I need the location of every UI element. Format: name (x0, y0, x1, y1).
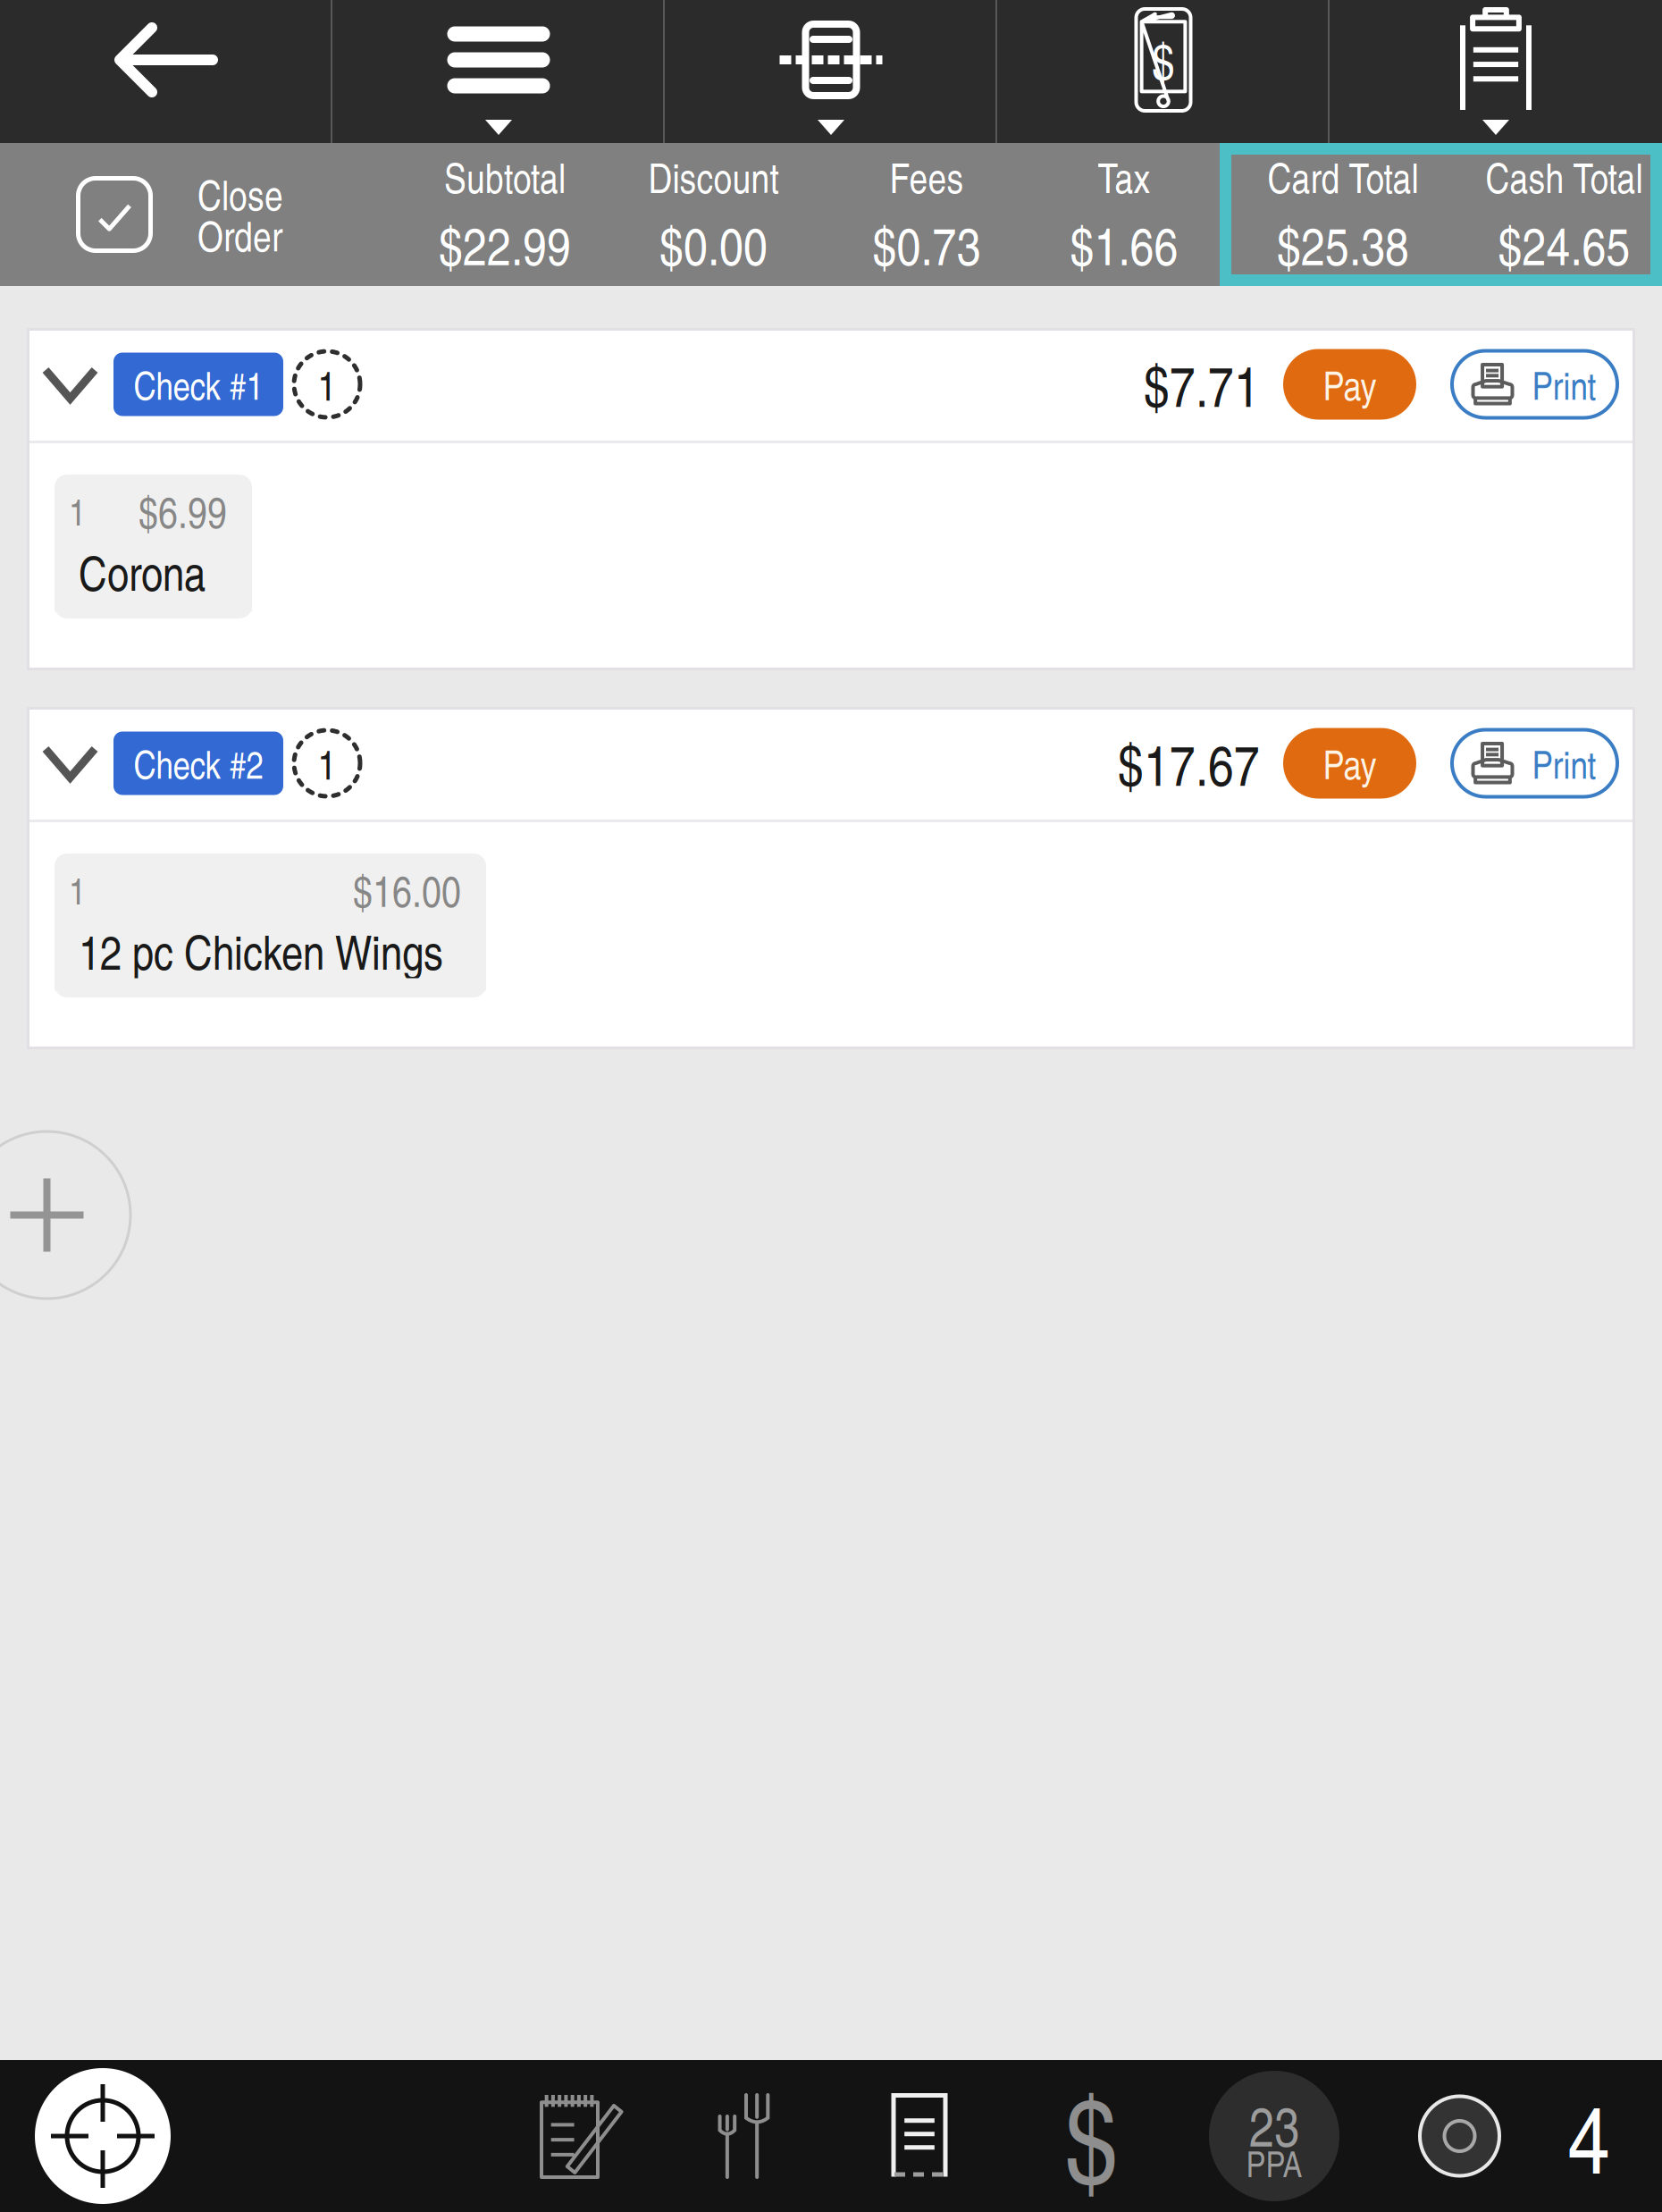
staticText: Check #2 (134, 737, 263, 789)
button[interactable]: Menu items (670, 2060, 822, 2212)
staticText: 1 (318, 357, 336, 412)
button[interactable]: Check #1 (113, 353, 283, 416)
button[interactable]: 4 (1537, 2060, 1641, 2212)
button[interactable]: Pay (1283, 349, 1416, 420)
staticText: $ (1152, 26, 1175, 94)
staticText: $0.00 (659, 208, 768, 280)
staticText: $1.66 (1070, 208, 1178, 280)
staticText: $0.73 (873, 208, 981, 280)
staticText: $25.38 (1277, 208, 1409, 280)
staticText: Pay (1323, 357, 1377, 411)
staticText: 23 (1249, 2087, 1299, 2162)
button[interactable]: 1 (55, 475, 252, 618)
button[interactable]: Record (1382, 2060, 1537, 2212)
staticText: Fees (890, 149, 964, 205)
button[interactable]: Menu (332, 0, 665, 143)
staticText: PPA (1246, 2138, 1302, 2187)
button[interactable]: 1 (55, 854, 486, 997)
staticText: $22.99 (439, 208, 571, 280)
staticText: Check #1 (134, 358, 263, 410)
staticText: $ (1065, 2056, 1118, 2212)
staticText: Subtotal (444, 149, 566, 205)
staticText: Order (197, 207, 282, 263)
button[interactable]: Guest count (283, 707, 371, 820)
button[interactable]: Print (1450, 728, 1619, 799)
staticText: $7.71 (1144, 346, 1260, 423)
button[interactable]: Collapse check (27, 328, 113, 441)
staticText: 1 (69, 485, 86, 536)
staticText: 12 pc Chicken Wings (79, 918, 443, 983)
staticText: $24.65 (1498, 208, 1630, 280)
button[interactable]: Check #2 (113, 732, 283, 795)
staticText: 4 (1568, 2072, 1610, 2200)
button[interactable]: Target (0, 2060, 206, 2212)
staticText: Print (1532, 358, 1596, 410)
button[interactable]: Pay (1283, 728, 1416, 799)
staticText: Print (1532, 737, 1596, 789)
staticText: $16.00 (353, 860, 461, 919)
staticText: $6.99 (138, 481, 227, 540)
button[interactable]: 23 per person average (1166, 2060, 1382, 2212)
button[interactable]: Payments (1017, 2060, 1166, 2212)
staticText: Discount (648, 149, 779, 205)
staticText: Tax (1098, 149, 1150, 205)
button[interactable]: Receipt (822, 2060, 1017, 2212)
button[interactable]: Order notes (1330, 0, 1662, 143)
staticText: Close (197, 166, 283, 222)
staticText: $17.67 (1118, 725, 1260, 802)
staticText: 1 (69, 864, 86, 915)
button[interactable]: Notes (493, 2060, 670, 2212)
staticText: Cash Total (1486, 149, 1643, 205)
staticText: Corona (79, 539, 206, 604)
staticText: Card Total (1267, 149, 1419, 205)
button[interactable]: Card Total (1220, 143, 1662, 286)
button[interactable]: Close (0, 143, 407, 286)
button[interactable]: Collapse check (27, 707, 113, 820)
button[interactable]: Split check (665, 0, 997, 143)
button[interactable]: Pay by phone (997, 0, 1330, 143)
button[interactable]: Guest count (283, 328, 371, 441)
button[interactable]: Back (0, 0, 332, 143)
button[interactable]: Print (1450, 349, 1619, 420)
staticText: Pay (1323, 736, 1377, 790)
staticText: 1 (318, 735, 336, 791)
